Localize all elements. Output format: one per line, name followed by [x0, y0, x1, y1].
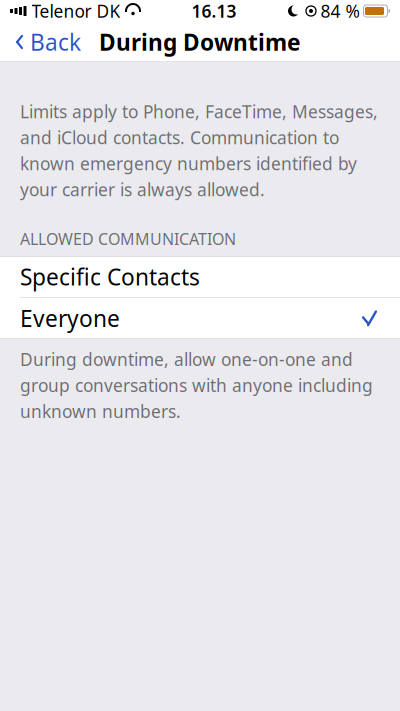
staticText: Back	[30, 27, 81, 57]
staticText: 16.13	[191, 0, 236, 22]
staticText: ALLOWED COMMUNICATION	[20, 228, 236, 249]
staticText: Everyone	[20, 303, 120, 333]
staticText: Specific Contacts	[20, 262, 200, 292]
staticText: During downtime, allow one-on-one and gr…	[20, 348, 373, 423]
staticText: During Downtime	[99, 27, 301, 57]
staticText: Telenor DK	[31, 0, 120, 22]
button[interactable]: Back	[0, 21, 81, 63]
button[interactable]: Specific Contacts	[0, 256, 400, 297]
staticText: 84 %	[320, 0, 359, 22]
button[interactable]: Everyone	[0, 298, 400, 339]
staticText: Limits apply to Phone, FaceTime, Message…	[20, 100, 378, 201]
